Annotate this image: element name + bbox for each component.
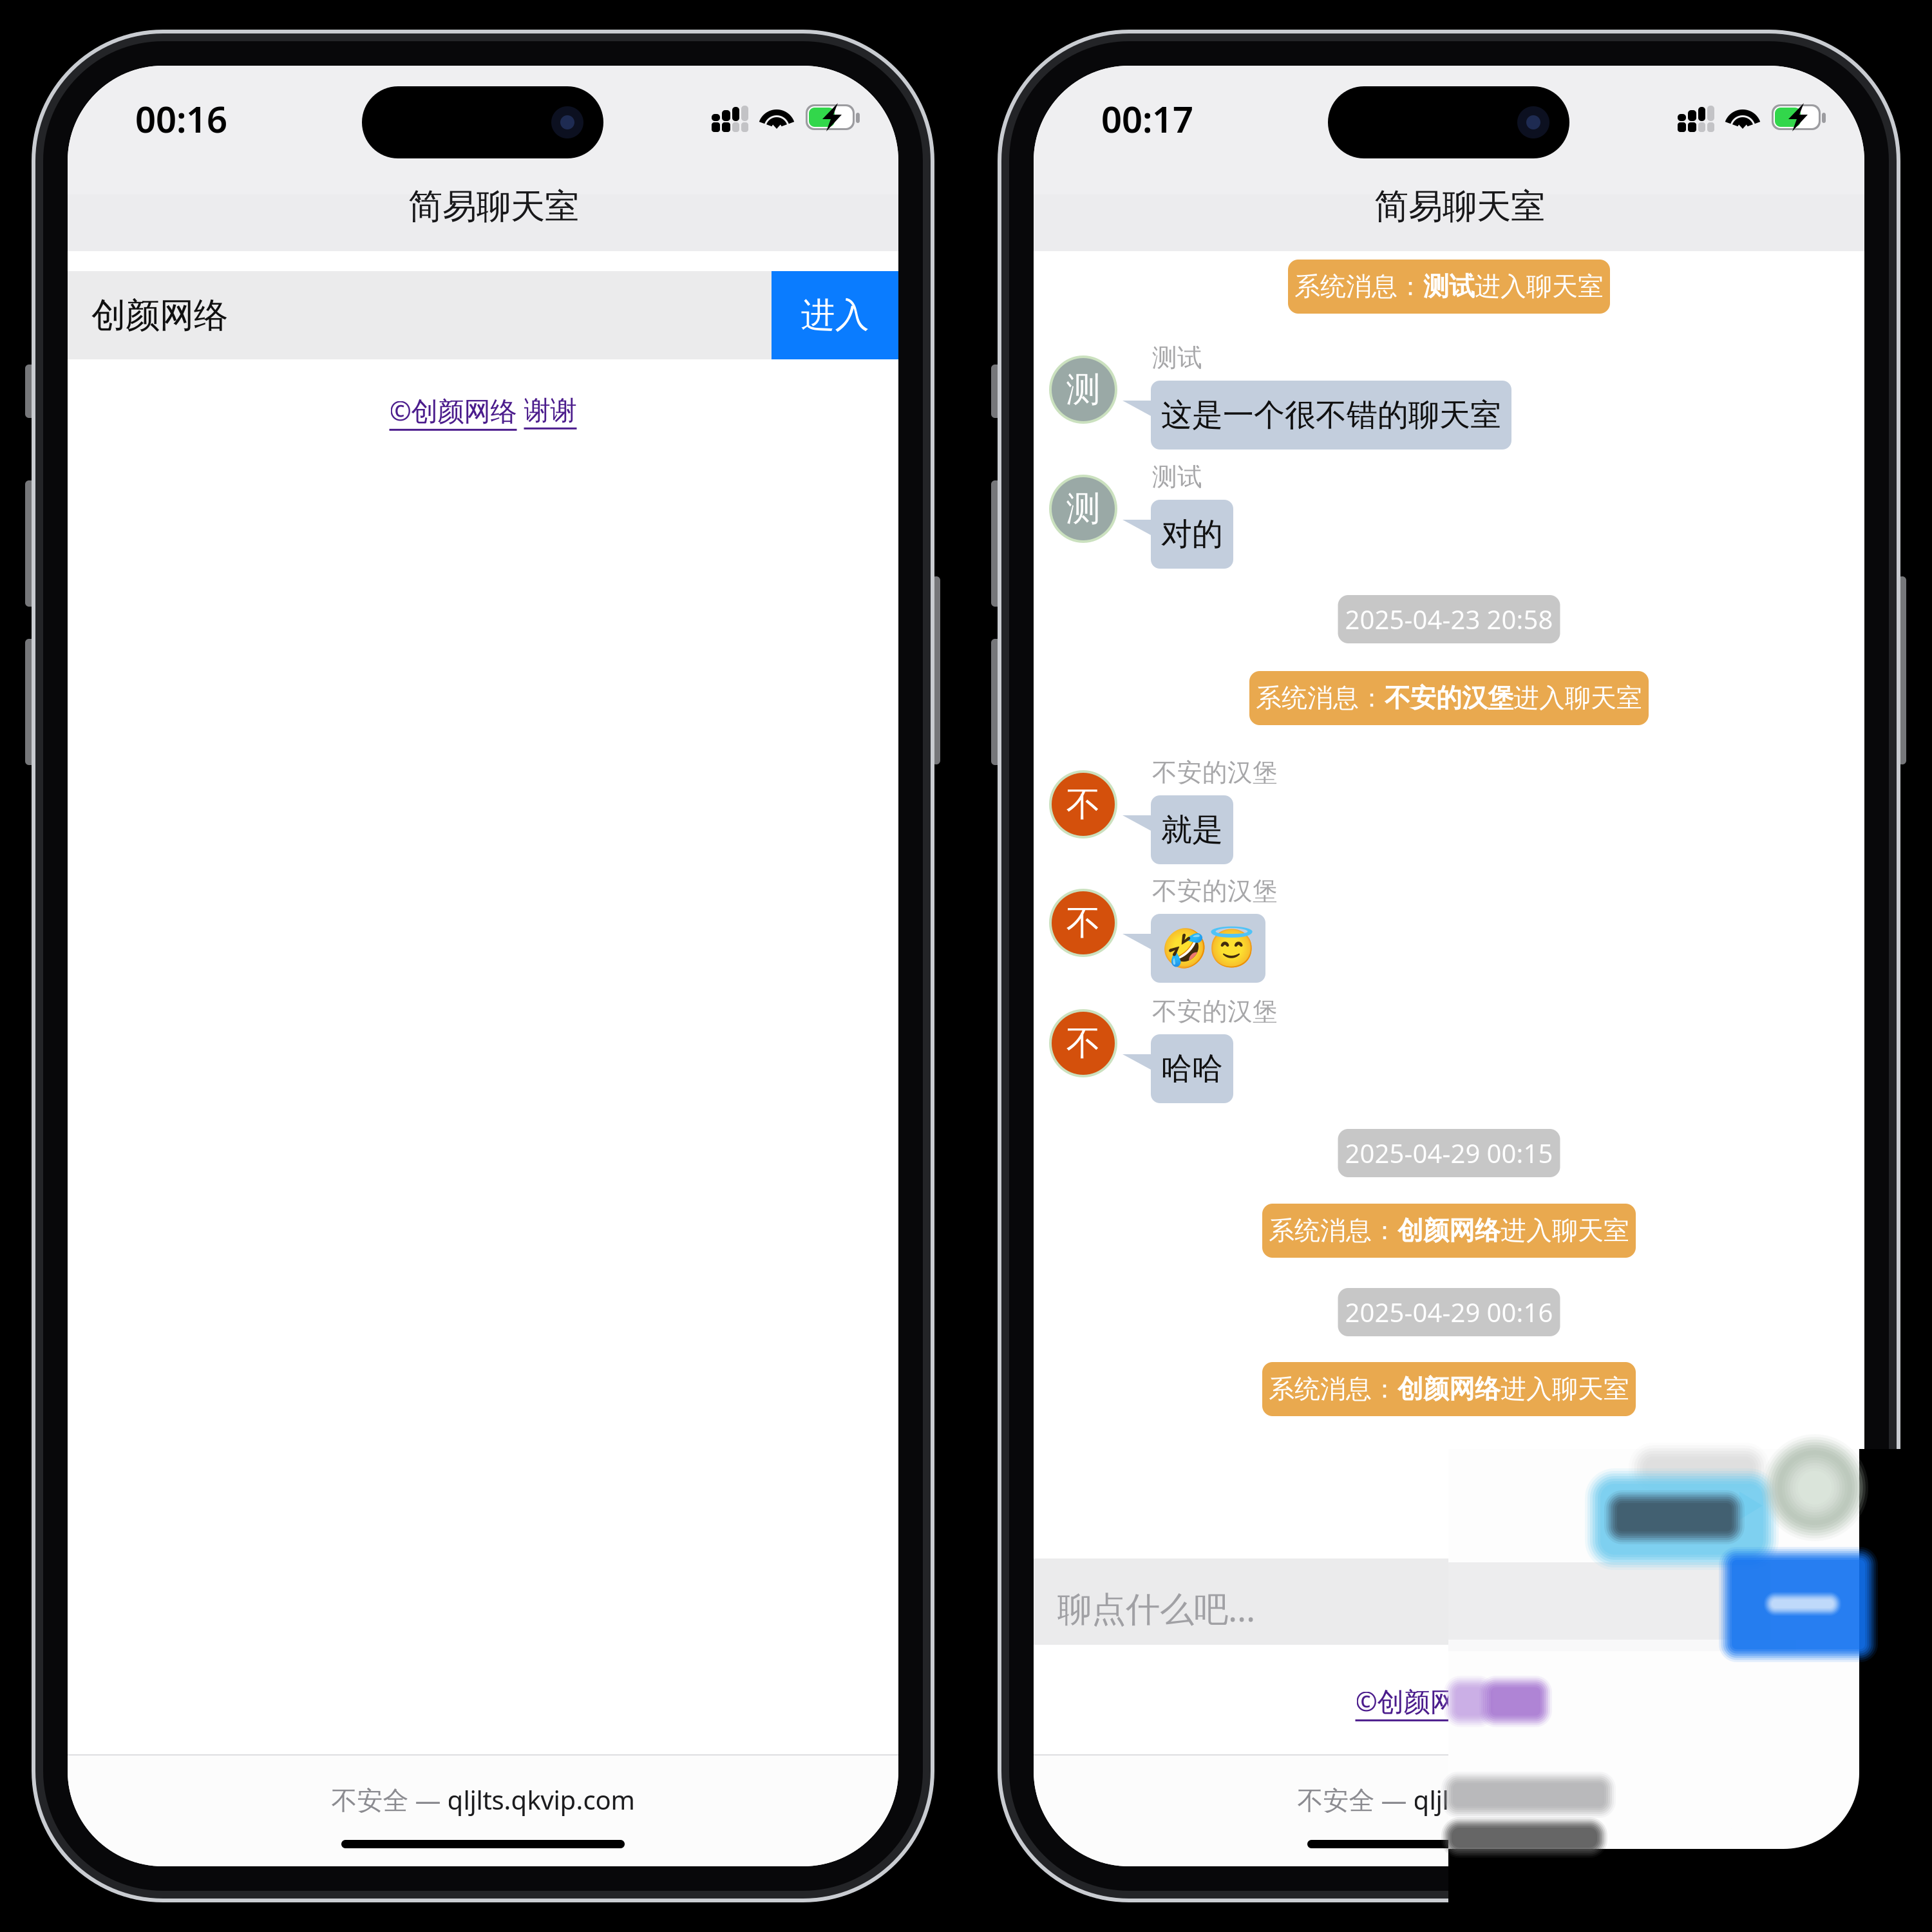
staticText: 创颜网络 [91, 294, 228, 336]
staticText: 谢谢 [1490, 1685, 1543, 1717]
staticText: 进入 [801, 294, 869, 336]
staticText: 谢谢 [524, 394, 577, 427]
staticText: 不安的汉堡 [1152, 996, 1278, 1027]
button[interactable]: 创颜网络 [68, 271, 898, 359]
staticText: 这是一个很不错的聊天室 [1161, 396, 1501, 434]
staticText [1483, 1685, 1490, 1720]
staticText: 简易聊天室 [1374, 185, 1545, 228]
staticText: 2025-04-29 00:16 [1345, 1295, 1553, 1329]
staticText: ©创颜网络 [1355, 1683, 1483, 1719]
staticText: 不安全 — [331, 1783, 447, 1817]
staticText: 就是 [1161, 811, 1223, 849]
staticText: 测试 [1152, 462, 1202, 492]
staticText: 测试 [1152, 343, 1202, 373]
staticText: 创颜网络 [1397, 1215, 1501, 1246]
staticText: 不安的汉堡 [1152, 876, 1278, 906]
staticText: 聊点什么吧... [1057, 1586, 1255, 1631]
staticText: 测 [1066, 368, 1100, 411]
staticText: 不 [1066, 902, 1100, 944]
staticText: 不 [1066, 783, 1100, 825]
staticText: 不安的汉堡 [1152, 757, 1278, 788]
staticText: 2025-04-29 00:15 [1345, 1136, 1553, 1170]
staticText: qljlts.qkvip.com [447, 1783, 635, 1817]
button[interactable]: 聊点什么吧... [1034, 1558, 1864, 1645]
staticText: 哈哈 [1161, 1050, 1223, 1088]
button[interactable]: ©创颜网络 [1034, 1683, 1864, 1721]
staticText: 系统消息： [1294, 271, 1423, 302]
staticText: 进入聊天室 [1501, 1215, 1629, 1246]
staticText: 进入聊天室 [1513, 682, 1642, 714]
staticText: 系统消息： [1269, 1373, 1397, 1405]
staticText: 测 [1066, 488, 1100, 530]
staticText: 系统消息： [1269, 1215, 1397, 1246]
staticText: 00:16 [135, 95, 227, 143]
staticText: 对的 [1161, 515, 1223, 553]
staticText: 不安的汉堡 [1385, 682, 1513, 714]
staticText: 测试 [1423, 271, 1475, 302]
staticText: 不 [1066, 1022, 1100, 1064]
staticText: 简易聊天室 [408, 185, 579, 228]
button[interactable]: ©创颜网络 [68, 393, 898, 431]
staticText: ©创颜网络 [389, 393, 517, 428]
staticText: 进入聊天室 [1475, 271, 1604, 302]
staticText: qljlts.qkvip.com [1413, 1783, 1601, 1817]
staticText: 创颜网络 [1397, 1373, 1501, 1405]
staticText: 00:17 [1101, 95, 1193, 143]
staticText: 系统消息： [1256, 682, 1385, 714]
staticText: 进入聊天室 [1501, 1373, 1629, 1405]
staticText: 不安全 — [1297, 1783, 1413, 1817]
staticText: 2025-04-23 20:58 [1345, 602, 1553, 636]
staticText: 🤣😇 [1161, 927, 1255, 970]
